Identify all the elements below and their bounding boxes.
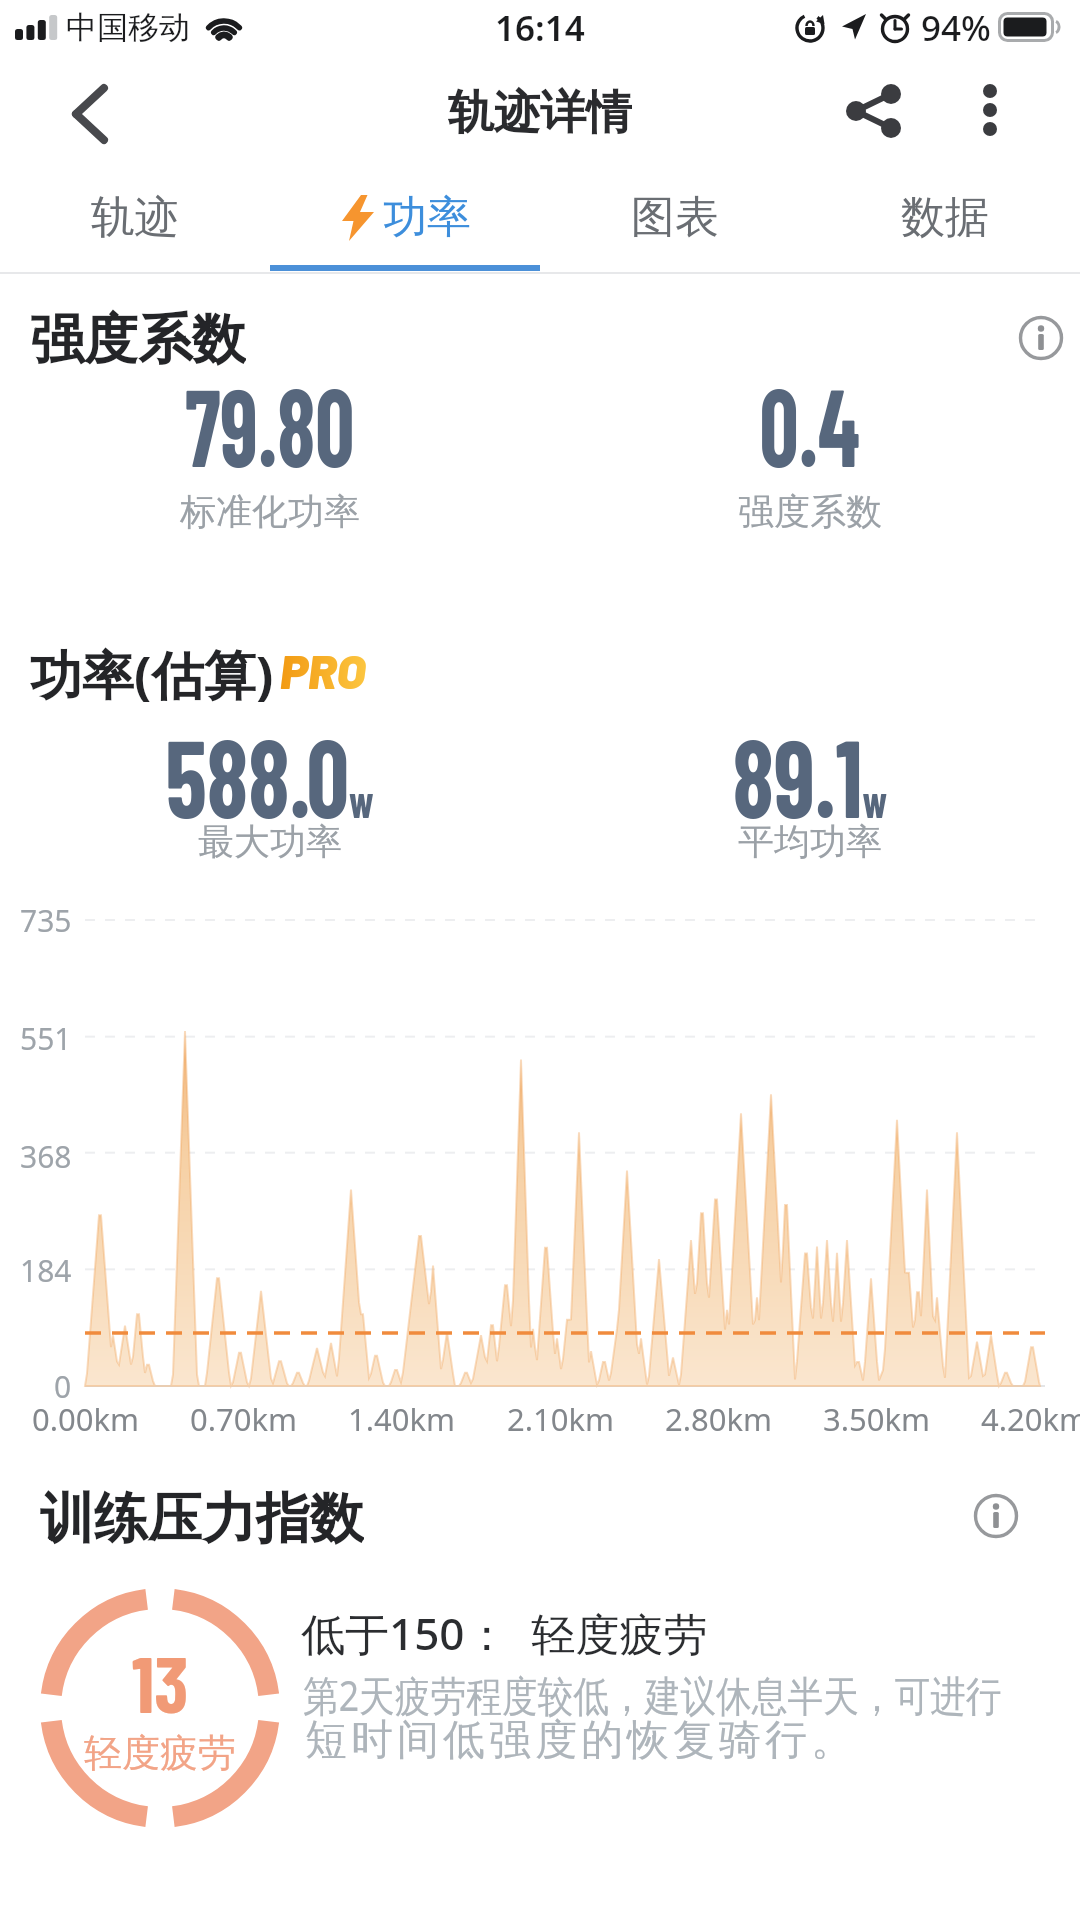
- staticText: 16:14: [495, 4, 585, 50]
- staticText: 89.1w: [733, 710, 887, 840]
- button[interactable]: 图表: [540, 170, 810, 265]
- button[interactable]: 13: [40, 1588, 280, 1828]
- button[interactable]: [955, 76, 1025, 146]
- staticText: 轻度疲劳: [84, 1729, 236, 1777]
- staticText: 轨迹: [91, 190, 179, 245]
- button[interactable]: [966, 1486, 1026, 1546]
- staticText: 2.10km: [507, 1398, 615, 1440]
- staticText: 功率: [383, 190, 471, 245]
- staticText: 强度系数: [738, 489, 882, 534]
- staticText: 4.20km: [981, 1398, 1080, 1440]
- staticText: 551: [20, 1018, 72, 1059]
- staticText: 强度系数: [30, 306, 246, 370]
- button[interactable]: [1011, 308, 1071, 368]
- staticText: 短时间低强度的恢复骑行。: [303, 1714, 855, 1766]
- staticText: PRO: [280, 641, 366, 699]
- staticText: 588.0w: [166, 710, 374, 840]
- staticText: 735: [20, 900, 72, 941]
- button[interactable]: 功率: [270, 170, 540, 265]
- staticText: 平均功率: [738, 819, 882, 864]
- button[interactable]: [830, 76, 920, 146]
- staticText: 0.70km: [190, 1398, 298, 1440]
- staticText: 3.50km: [823, 1398, 931, 1440]
- staticText: 368: [20, 1136, 72, 1177]
- staticText: 最大功率: [198, 819, 342, 864]
- staticText: 第2天疲劳程度较低，建议休息半天，可进行: [303, 1666, 1003, 1718]
- staticText: 79.80: [185, 359, 355, 489]
- button[interactable]: 轨迹: [0, 170, 270, 265]
- staticText: 功率(估算): [30, 638, 274, 702]
- staticText: 图表: [631, 190, 719, 245]
- staticText: 中国移动: [66, 8, 190, 47]
- staticText: 低于150： 轻度疲劳: [301, 1603, 708, 1659]
- staticText: 标准化功率: [180, 489, 360, 534]
- staticText: 数据: [901, 190, 989, 245]
- staticText: 13: [132, 1635, 189, 1715]
- staticText: 0.4: [760, 359, 860, 489]
- staticText: 184: [20, 1250, 72, 1291]
- staticText: 2.80km: [665, 1398, 773, 1440]
- button[interactable]: [50, 74, 130, 154]
- button[interactable]: 数据: [810, 170, 1080, 265]
- staticText: 0.00km: [32, 1398, 140, 1440]
- staticText: 轨迹详情: [448, 84, 632, 140]
- staticText: 训练压力指数: [40, 1485, 364, 1549]
- staticText: 94%: [921, 4, 991, 50]
- staticText: 1.40km: [348, 1398, 456, 1440]
- staticText: 0: [54, 1366, 72, 1407]
